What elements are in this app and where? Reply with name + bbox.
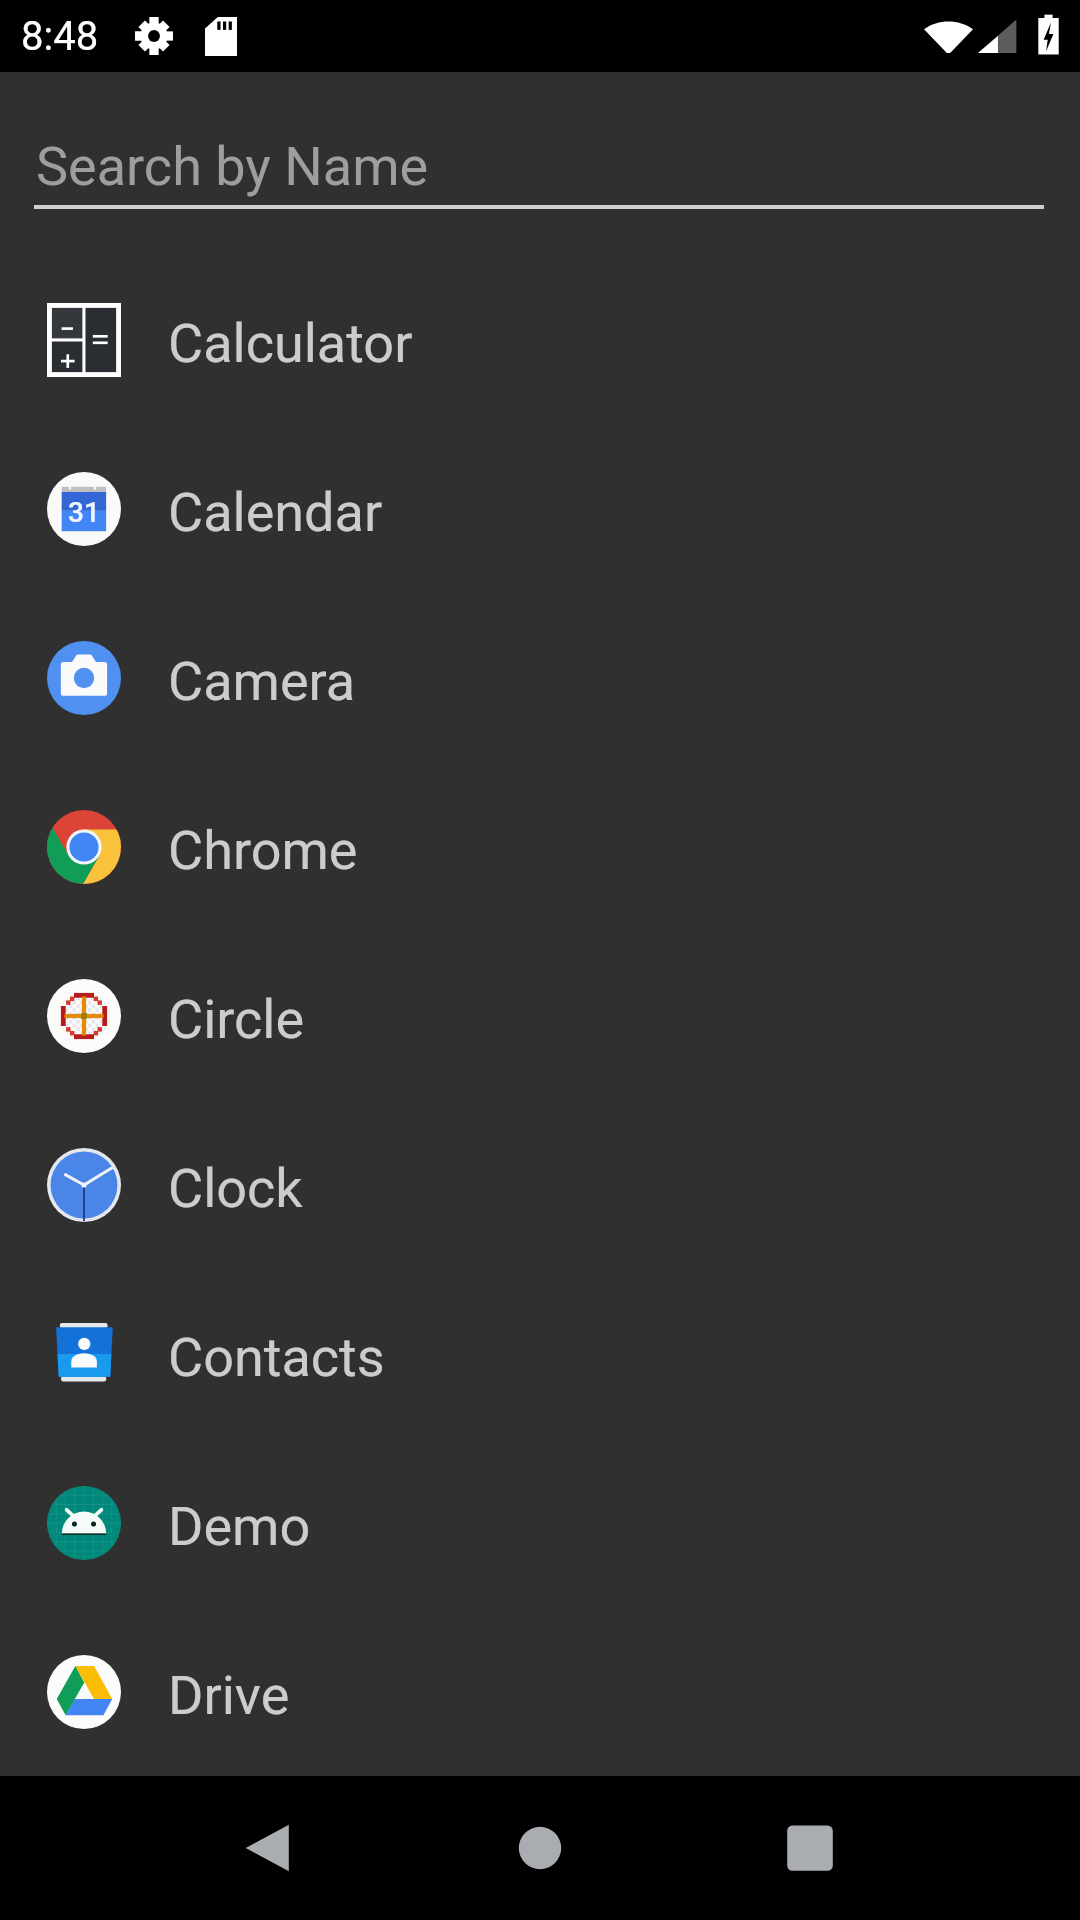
button[interactable]: Chrome — [0, 762, 1080, 931]
staticText: Camera — [168, 650, 356, 713]
button[interactable]: Search by Name — [0, 72, 1080, 255]
staticText: Clock — [168, 1157, 303, 1220]
button[interactable]: Home — [466, 1776, 614, 1920]
staticText: Search by Name — [36, 135, 429, 198]
button[interactable]: Calculator — [0, 255, 1080, 424]
button[interactable]: Drive — [0, 1607, 1080, 1776]
staticText: Calculator — [168, 312, 413, 375]
staticText: Chrome — [168, 819, 358, 882]
button[interactable]: Back — [193, 1776, 341, 1920]
other: Settings — [135, 17, 173, 55]
staticText: 31 — [68, 496, 100, 529]
button[interactable]: Camera — [0, 593, 1080, 762]
staticText: 8:48 — [21, 13, 99, 60]
button[interactable]: Recent apps — [736, 1776, 884, 1920]
staticText: Contacts — [168, 1326, 385, 1389]
staticText: Demo — [168, 1495, 311, 1558]
staticText: Drive — [168, 1664, 290, 1727]
button[interactable]: Contacts — [0, 1269, 1080, 1438]
other: SD card — [205, 17, 237, 56]
staticText: Circle — [168, 988, 305, 1051]
button[interactable]: Circle — [0, 931, 1080, 1100]
staticText: Calendar — [168, 481, 383, 544]
button[interactable]: Clock — [0, 1100, 1080, 1269]
button[interactable]: Demo — [0, 1438, 1080, 1607]
button[interactable]: 31 — [0, 424, 1080, 593]
